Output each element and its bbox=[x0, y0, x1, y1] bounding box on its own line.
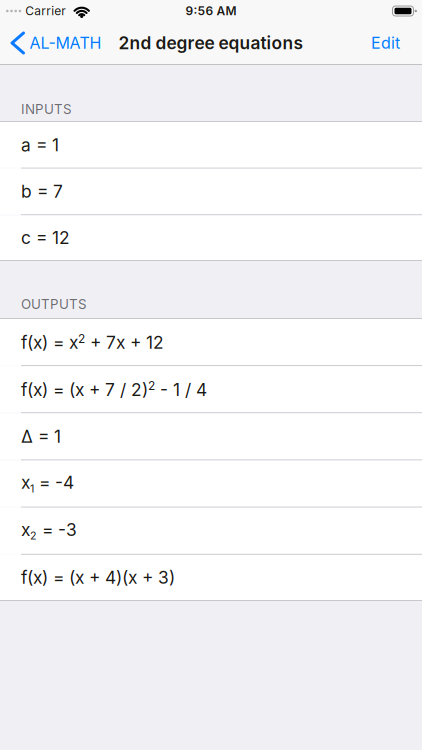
button[interactable]: c = 12 bbox=[0, 215, 422, 260]
button[interactable]: b = 7 bbox=[0, 169, 422, 214]
staticText: a = 1 bbox=[21, 135, 59, 155]
staticText: 2nd degree equations bbox=[118, 33, 303, 53]
button[interactable]: f(x) = (x + 4)(x + 3) bbox=[0, 555, 422, 600]
staticText: x2 = -3 bbox=[21, 519, 77, 542]
button[interactable]: f(x) = (x + 7 / 2)2 - 1 / 4 bbox=[0, 366, 422, 412]
staticText: f(x) = (x + 4)(x + 3) bbox=[21, 567, 175, 588]
button[interactable]: x2 = -3 bbox=[0, 508, 422, 554]
button[interactable]: Δ = 1 bbox=[0, 413, 422, 459]
button[interactable]: f(x) = x2 + 7x + 12 bbox=[0, 319, 422, 365]
staticText: c = 12 bbox=[21, 227, 70, 248]
staticText: INPUTS bbox=[21, 101, 72, 117]
staticText: Edit bbox=[371, 34, 400, 52]
button[interactable]: AL-MATH bbox=[0, 33, 101, 53]
staticText: Δ = 1 bbox=[21, 426, 61, 447]
staticText: f(x) = (x + 7 / 2)2 - 1 / 4 bbox=[21, 379, 207, 400]
button[interactable]: a = 1 bbox=[0, 122, 422, 168]
staticText: 9:56 AM bbox=[185, 4, 236, 18]
staticText: Carrier bbox=[25, 4, 66, 18]
staticText: x1 = -4 bbox=[21, 472, 74, 495]
staticText: f(x) = x2 + 7x + 12 bbox=[21, 331, 164, 353]
staticText: b = 7 bbox=[21, 181, 63, 202]
button[interactable]: Edit bbox=[371, 34, 422, 52]
staticText: AL-MATH bbox=[29, 34, 101, 52]
button[interactable]: x1 = -4 bbox=[0, 460, 422, 507]
staticText: OUTPUTS bbox=[21, 296, 87, 312]
